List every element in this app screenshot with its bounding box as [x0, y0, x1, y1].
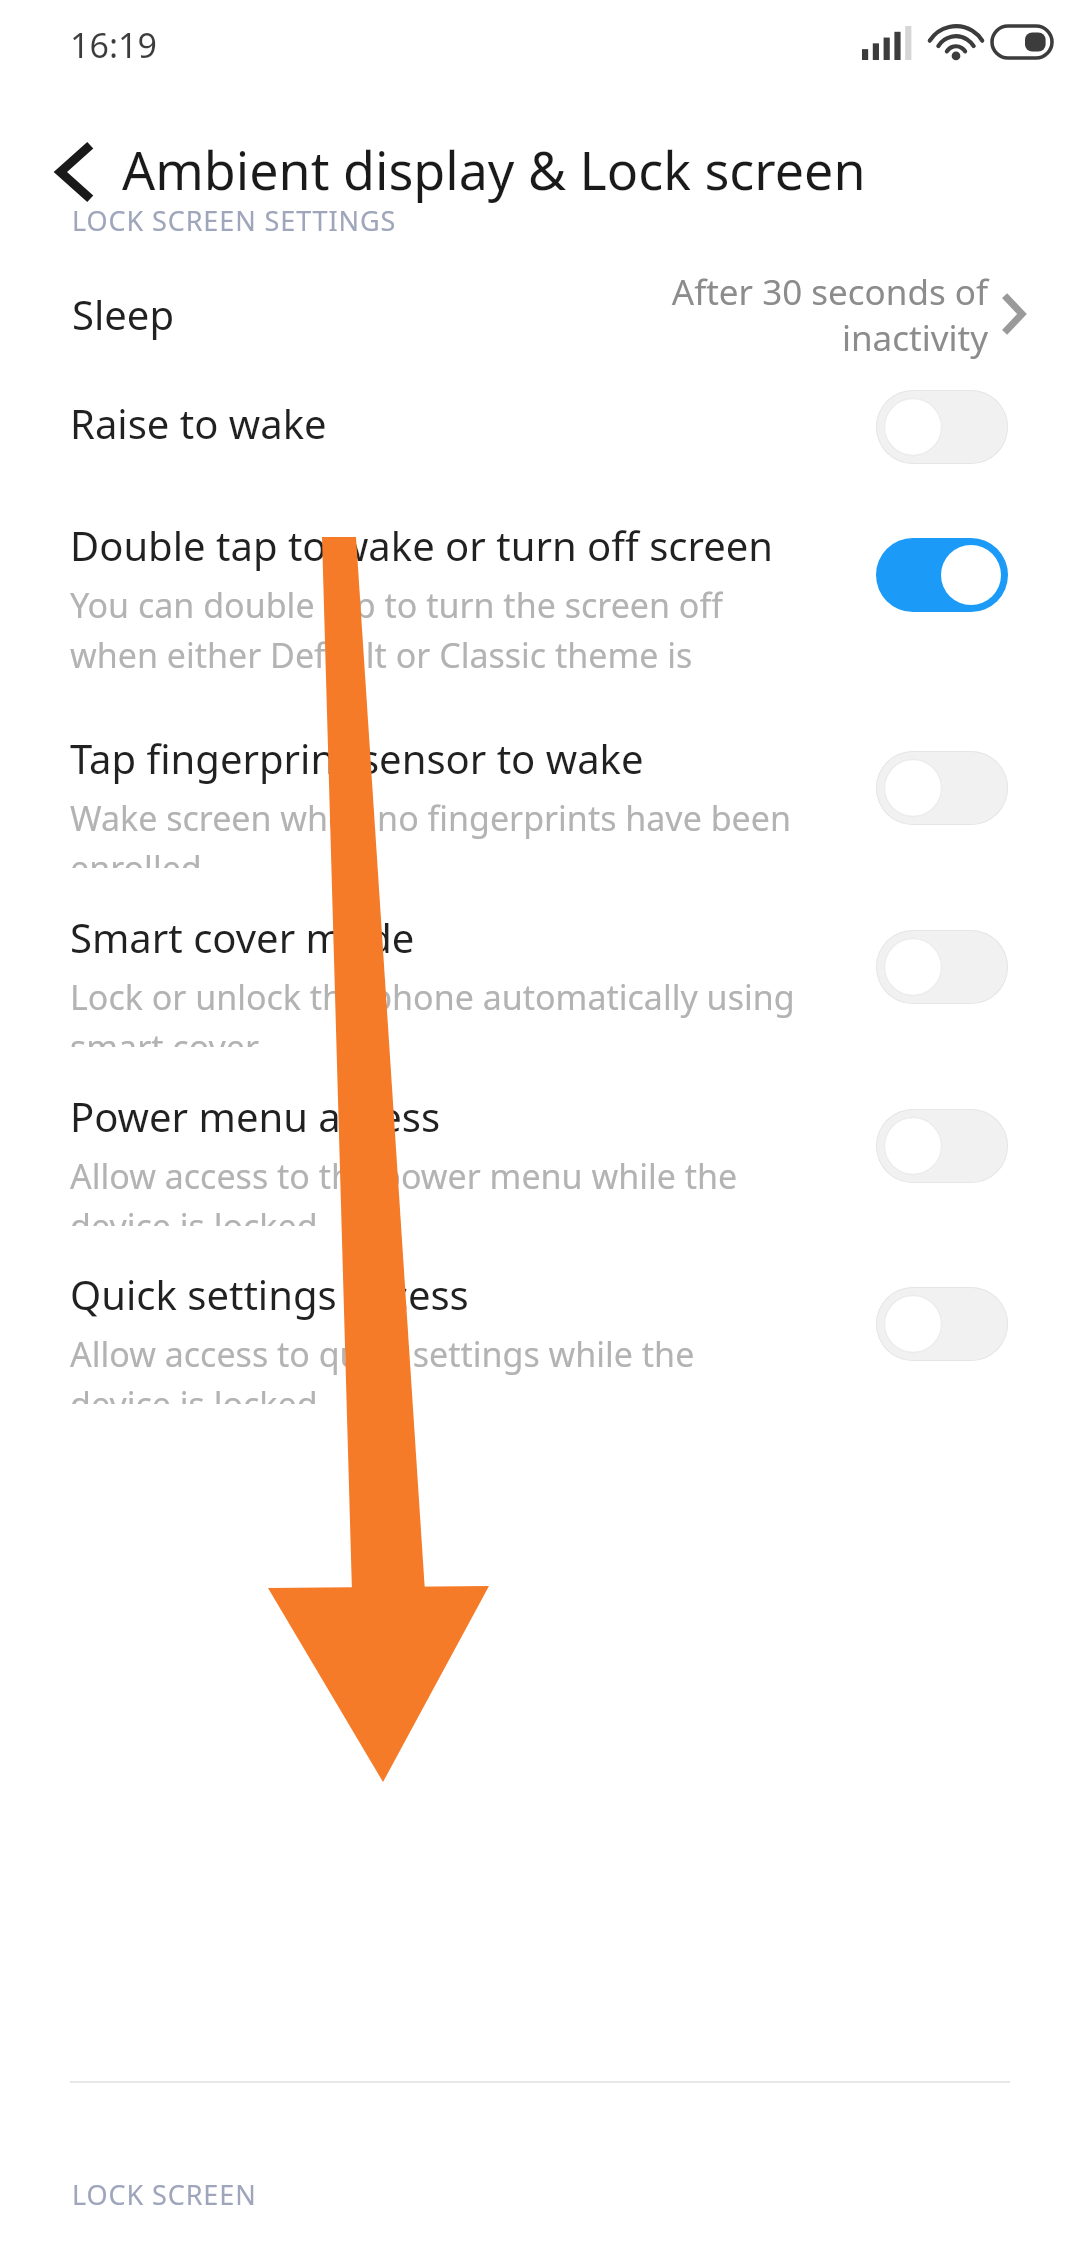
button[interactable]: Quick settings access [0, 1249, 1080, 1404]
button[interactable]: Off [876, 930, 1008, 1004]
button[interactable]: Tap fingerprint sensor to wake [0, 713, 1080, 868]
staticText: Sleep [72, 287, 174, 341]
staticText: Raise to wake [70, 396, 327, 450]
staticText: Allow access to the power menu while the… [70, 1153, 738, 1226]
button[interactable]: Sleep [0, 262, 1080, 366]
staticText: Wake screen when no fingerprints have be… [70, 795, 791, 868]
staticText: Ambient display & Lock screen [122, 134, 866, 205]
staticText: LOCK SCREEN [72, 2176, 257, 2213]
staticText: LOCK SCREEN SETTINGS [72, 202, 397, 239]
button[interactable]: Double tap to wake or turn off screen [0, 500, 1080, 690]
button[interactable]: Power menu access [0, 1071, 1080, 1226]
button[interactable]: Back [36, 134, 112, 210]
button[interactable]: On [876, 538, 1008, 612]
button[interactable]: Off [876, 1287, 1008, 1361]
staticText: 16:19 [70, 22, 157, 68]
button[interactable]: Raise to wake [0, 378, 1080, 474]
staticText: Quick settings access [70, 1267, 469, 1321]
button[interactable]: Off [876, 390, 1008, 464]
button[interactable]: Off [876, 751, 1008, 825]
staticText: After 30 seconds of inactivity [568, 268, 988, 361]
staticText: Power menu access [70, 1089, 441, 1143]
staticText: Allow access to quick settings while the… [70, 1331, 695, 1404]
staticText: Lock or unlock the phone automatically u… [70, 974, 795, 1047]
button[interactable]: Off [876, 1109, 1008, 1183]
button[interactable]: Smart cover mode [0, 892, 1080, 1047]
staticText: Double tap to wake or turn off screen [70, 518, 774, 572]
staticText: You can double tap to turn the screen of… [70, 582, 723, 690]
staticText: Tap fingerprint sensor to wake [70, 731, 644, 785]
staticText: Smart cover mode [70, 910, 415, 964]
